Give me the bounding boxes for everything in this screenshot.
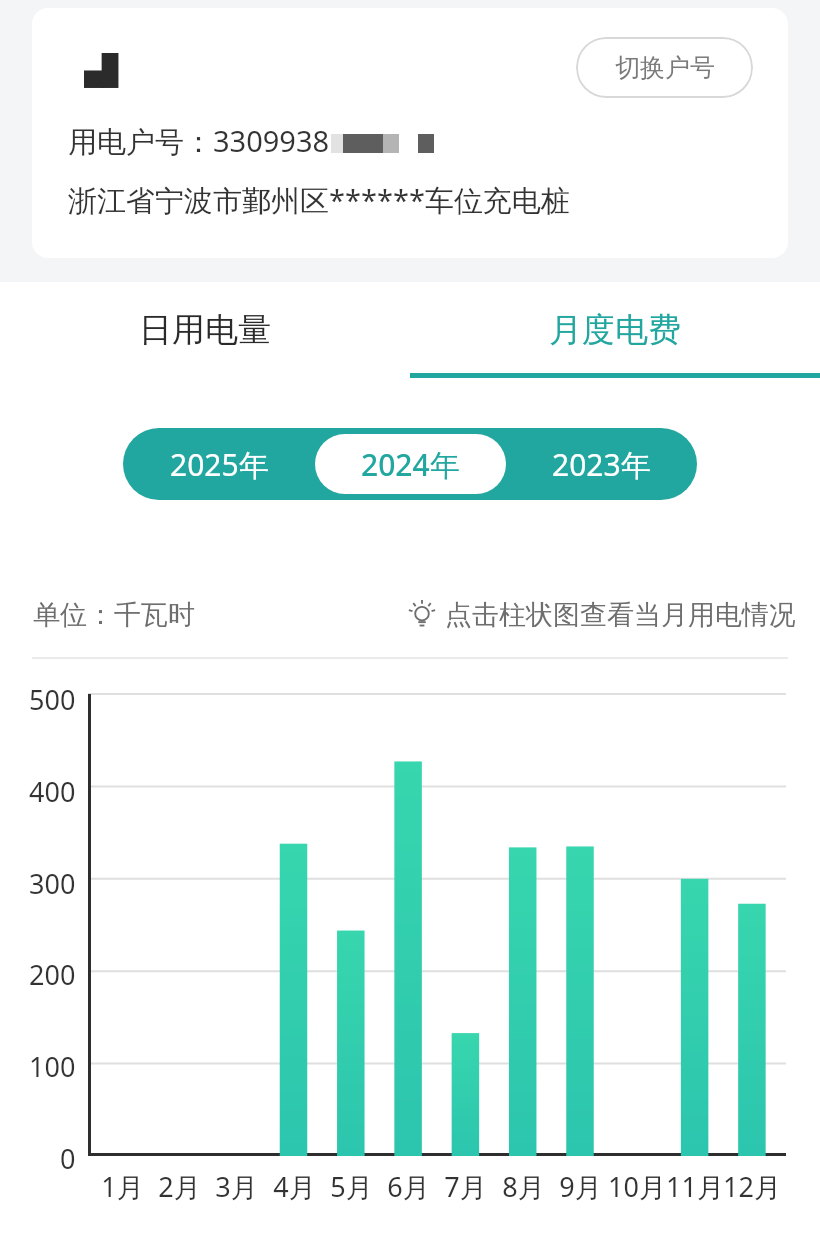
staticText: 浙江省宁波市鄞州区******车位充电桩: [68, 180, 570, 220]
button[interactable]: 切换户号: [576, 37, 753, 98]
other: Tip: [405, 598, 439, 632]
staticText: 9月: [559, 1168, 602, 1205]
button[interactable]: 12月: [712, 1168, 792, 1205]
staticText: 用电户号：3309938: [68, 121, 330, 161]
staticText: 点击柱状图查看当月用电情况: [445, 598, 796, 632]
button[interactable]: 日用电量: [0, 282, 410, 378]
button[interactable]: 4月: [254, 1168, 334, 1205]
staticText: 2月: [158, 1168, 201, 1205]
staticText: 0: [60, 1140, 76, 1177]
staticText: 400: [29, 773, 76, 810]
staticText: 100: [29, 1048, 76, 1085]
staticText: 7月: [444, 1168, 487, 1205]
button[interactable]: Logo: [32, 8, 788, 258]
button[interactable]: Tip: [405, 598, 796, 632]
button[interactable]: 月度电费: [410, 282, 820, 378]
staticText: 单位：千瓦时: [33, 598, 195, 632]
button[interactable]: 6月: [368, 1168, 448, 1205]
staticText: 切换户号: [615, 52, 715, 83]
button[interactable]: 2月: [139, 1168, 219, 1205]
button[interactable]: 7月: [425, 1168, 505, 1205]
staticText: 10月: [608, 1168, 666, 1205]
button[interactable]: 10月: [597, 1168, 677, 1205]
staticText: 500: [29, 681, 76, 718]
staticText: 月度电费: [549, 309, 681, 351]
button[interactable]: 2024年: [315, 434, 506, 494]
button[interactable]: 1月: [82, 1168, 162, 1205]
staticText: 200: [29, 956, 76, 993]
staticText: 11月: [666, 1168, 724, 1205]
button[interactable]: 8月: [483, 1168, 563, 1205]
staticText: 日用电量: [139, 309, 271, 351]
staticText: 3月: [215, 1168, 258, 1205]
staticText: 1月: [101, 1168, 144, 1205]
staticText: 2025年: [170, 444, 269, 485]
staticText: 12月: [723, 1168, 781, 1205]
button[interactable]: 9月: [540, 1168, 620, 1205]
button[interactable]: 2025年: [123, 428, 315, 500]
button[interactable]: 2023年: [506, 428, 697, 500]
button[interactable]: 3月: [196, 1168, 276, 1205]
staticText: 6月: [387, 1168, 430, 1205]
staticText: 2023年: [552, 444, 651, 485]
staticText: 8月: [502, 1168, 545, 1205]
button[interactable]: 11月: [655, 1168, 735, 1205]
staticText: 5月: [330, 1168, 373, 1205]
other: Logo: [84, 53, 126, 91]
button[interactable]: 5月: [311, 1168, 391, 1205]
staticText: 2024年: [361, 444, 460, 485]
staticText: 300: [29, 865, 76, 902]
staticText: 4月: [273, 1168, 316, 1205]
